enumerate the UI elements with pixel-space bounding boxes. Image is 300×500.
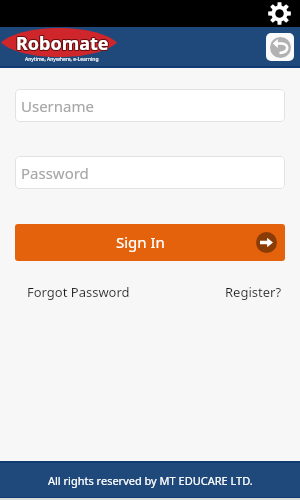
staticText: Anytime, Anywhere, e-Learning (25, 56, 99, 63)
staticText: Password (21, 163, 89, 183)
staticText: Register? (225, 283, 282, 301)
button[interactable]: Password (15, 156, 285, 189)
button[interactable]: Settings (268, 2, 291, 25)
staticText: All rights reserved by MT EDUCARE LTD. (48, 473, 253, 488)
staticText: Robomate (17, 31, 110, 56)
button[interactable]: Register? (219, 277, 288, 307)
staticText: Forgot Password (27, 283, 130, 301)
staticText: Robomate (16, 32, 109, 57)
staticText: Robomate (17, 30, 110, 55)
staticText: Robomate (15, 30, 108, 55)
staticText: Robomate (16, 31, 109, 56)
staticText: Robomate (15, 32, 108, 57)
staticText: Sign In (116, 232, 165, 252)
button[interactable]: Sign In (15, 224, 285, 261)
button[interactable]: Back (266, 33, 294, 61)
staticText: Robomate (16, 30, 109, 55)
button[interactable]: Forgot Password (21, 277, 136, 307)
button[interactable]: Username (15, 89, 285, 122)
staticText: Username (21, 96, 94, 116)
staticText: Robomate (17, 32, 110, 57)
staticText: Robomate (15, 31, 108, 56)
